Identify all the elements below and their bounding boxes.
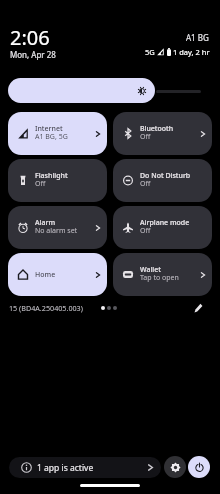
staticText: Internet <box>35 124 63 134</box>
staticText: Off <box>140 132 151 142</box>
staticText: Off <box>140 179 151 189</box>
button[interactable]: Internet <box>8 112 107 155</box>
staticText: 5G <box>145 47 155 57</box>
staticText: Off <box>140 226 151 236</box>
staticText: Do Not Disturb <box>140 171 191 181</box>
button[interactable]: Settings <box>164 456 186 478</box>
button[interactable]: Airplane mode <box>113 206 212 249</box>
button[interactable]: Home <box>8 253 107 296</box>
button[interactable]: Brightness <box>8 78 155 103</box>
button[interactable]: Power <box>188 456 210 478</box>
button[interactable]: 1 app is active <box>9 457 161 478</box>
staticText: Home <box>35 270 56 280</box>
button[interactable]: Wallet <box>113 253 212 296</box>
staticText: 2:06 <box>10 24 50 51</box>
button[interactable]: Flashlight <box>8 159 107 202</box>
staticText: A1 BG, 5G <box>35 132 68 142</box>
staticText: Mon, Apr 28 <box>10 49 56 60</box>
staticText: Airplane mode <box>140 218 190 228</box>
button[interactable]: Edit tiles <box>190 300 206 316</box>
staticText: 1 app is active <box>37 462 94 474</box>
staticText: Wallet <box>140 265 161 275</box>
staticText: 1 day, 2 hr <box>173 47 210 57</box>
staticText: Flashlight <box>35 171 68 181</box>
staticText: Off <box>35 179 46 189</box>
staticText: A1 BG <box>186 32 209 43</box>
staticText: Tap to open <box>140 273 179 283</box>
staticText: Alarm <box>35 218 56 228</box>
staticText: 15 (BD4A.250405.003) <box>9 303 83 313</box>
button[interactable]: Bluetooth <box>113 112 212 155</box>
staticText: Bluetooth <box>140 124 174 134</box>
button[interactable]: Do Not Disturb <box>113 159 212 202</box>
button[interactable]: Alarm <box>8 206 107 249</box>
staticText: No alarm set <box>35 226 78 236</box>
